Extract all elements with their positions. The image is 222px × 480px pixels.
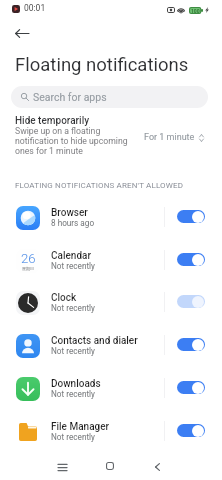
button[interactable]: Search for apps [11,86,208,108]
staticText: Clock [51,292,77,304]
button[interactable]: Toggle [177,210,205,223]
staticText: 00:01 [24,3,46,13]
staticText: Downloads [51,378,101,390]
button[interactable]: Toggle [177,424,205,437]
button[interactable]: Home [98,454,122,478]
button[interactable]: Hide temporarily [0,112,222,164]
staticText: Hide temporarily [15,115,90,127]
button[interactable]: Browser [0,199,222,242]
button[interactable]: Toggle [177,253,205,266]
button[interactable]: Back [145,455,169,479]
button[interactable]: 26 [0,242,222,285]
button[interactable]: Toggle [177,295,205,308]
staticText: Not recently [51,432,95,442]
staticText: 100 [191,8,200,14]
staticText: 26 [21,251,36,266]
staticText: Not recently [51,303,95,313]
button[interactable]: Downloads [0,370,222,413]
staticText: 8 hours ago [51,218,95,228]
button[interactable]: Recent apps [50,455,74,479]
staticText: Not recently [51,346,95,356]
button[interactable]: Toggle [177,381,205,394]
staticText: Contacts and dialer [51,335,138,347]
staticText: Swipe up on a floating notification to h… [15,126,128,156]
button[interactable]: Clock [0,284,222,327]
staticText: Search for apps [33,91,107,103]
staticText: File Manager [51,421,110,433]
staticText: Browser [51,207,88,219]
staticText: Not recently [51,261,95,271]
staticText: Calendar [51,250,91,262]
button[interactable]: File Manager [0,413,222,456]
staticText: For 1 minute [144,132,195,143]
button[interactable]: Back [10,21,34,45]
staticText: Not recently [51,389,95,399]
staticText: Floating notifications [15,54,189,76]
button[interactable]: Toggle [177,338,205,351]
staticText: 星期日 [22,266,34,271]
staticText: FLOATING NOTIFICATIONS AREN'T ALLOWED [15,181,184,190]
button[interactable]: Contacts and dialer [0,327,222,370]
